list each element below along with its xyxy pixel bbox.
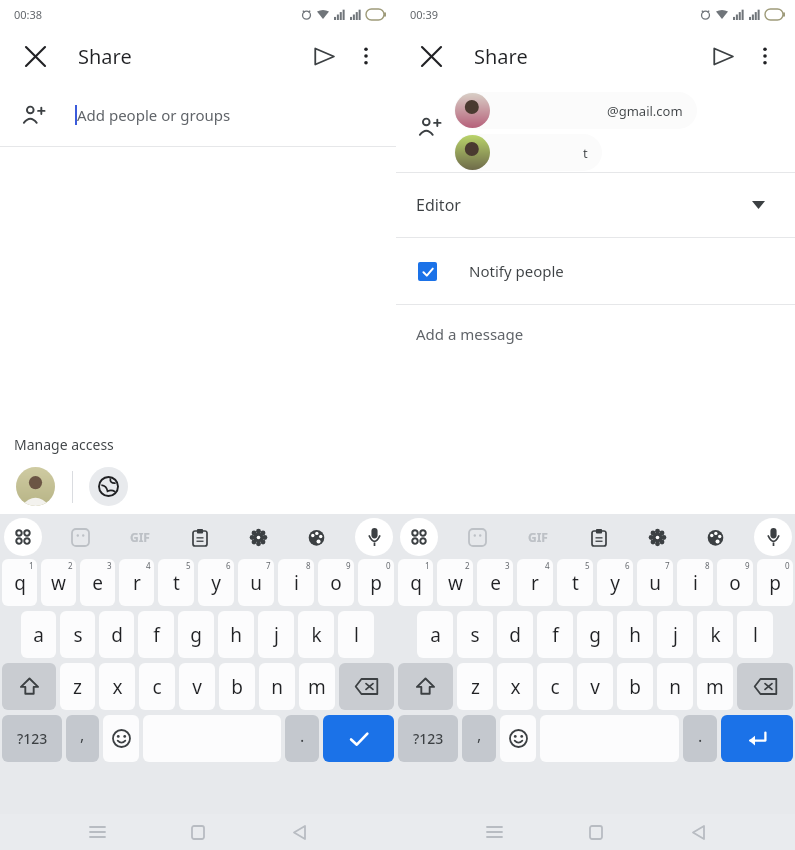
- button[interactable]: Settings: [239, 518, 277, 556]
- button[interactable]: t: [557, 559, 593, 606]
- button[interactable]: w: [437, 559, 473, 606]
- button[interactable]: o: [318, 559, 354, 606]
- button[interactable]: b: [617, 663, 653, 710]
- button[interactable]: Voice input: [754, 518, 792, 556]
- button[interactable]: s: [60, 611, 95, 658]
- button[interactable]: Themes: [696, 518, 734, 556]
- button[interactable]: j: [657, 611, 693, 658]
- button[interactable]: Toolbox: [4, 518, 42, 556]
- button[interactable]: m: [299, 663, 335, 710]
- button[interactable]: ,: [66, 715, 99, 762]
- button[interactable]: j: [258, 611, 294, 658]
- button[interactable]: Send: [701, 34, 745, 78]
- button[interactable]: Close: [18, 39, 52, 73]
- button[interactable]: Back: [680, 814, 716, 850]
- button[interactable]: Editor: [396, 173, 795, 237]
- button[interactable]: Clipboard: [181, 518, 219, 556]
- button[interactable]: k: [298, 611, 334, 658]
- button[interactable]: Notify people: [396, 238, 795, 304]
- button[interactable]: a: [417, 611, 453, 658]
- button[interactable]: Home: [180, 814, 216, 850]
- button[interactable]: l: [338, 611, 374, 658]
- button[interactable]: Add people or groups: [0, 84, 396, 146]
- button[interactable]: Enter: [721, 715, 793, 762]
- button[interactable]: q: [398, 559, 433, 606]
- button[interactable]: t: [454, 134, 602, 171]
- button[interactable]: q: [2, 559, 37, 606]
- button[interactable]: o: [717, 559, 753, 606]
- button[interactable]: g: [577, 611, 613, 658]
- button[interactable]: More options: [346, 36, 386, 76]
- button[interactable]: m: [697, 663, 733, 710]
- button[interactable]: t: [158, 559, 194, 606]
- button[interactable]: Link sharing: [89, 467, 128, 506]
- button[interactable]: Backspace: [737, 663, 793, 710]
- button[interactable]: Owner avatar: [16, 467, 55, 506]
- button[interactable]: v: [179, 663, 215, 710]
- button[interactable]: Back: [281, 814, 317, 850]
- button[interactable]: k: [697, 611, 733, 658]
- button[interactable]: GIF: [516, 515, 560, 559]
- button[interactable]: Emoji: [500, 715, 536, 762]
- button[interactable]: u: [238, 559, 274, 606]
- button[interactable]: y: [597, 559, 633, 606]
- button[interactable]: Stickers: [61, 518, 99, 556]
- button[interactable]: More options: [745, 36, 785, 76]
- button[interactable]: Voice input: [355, 518, 393, 556]
- button[interactable]: c: [139, 663, 175, 710]
- button[interactable]: d: [497, 611, 533, 658]
- button[interactable]: .: [683, 715, 717, 762]
- button[interactable]: c: [537, 663, 573, 710]
- button[interactable]: ?123: [398, 715, 458, 762]
- button[interactable]: r: [517, 559, 553, 606]
- button[interactable]: @gmail.com: [454, 92, 697, 129]
- button[interactable]: GIF: [118, 515, 162, 559]
- button[interactable]: h: [218, 611, 254, 658]
- button[interactable]: n: [657, 663, 693, 710]
- button[interactable]: i: [278, 559, 314, 606]
- button[interactable]: s: [457, 611, 493, 658]
- button[interactable]: Recents: [476, 814, 512, 850]
- button[interactable]: Settings: [638, 518, 676, 556]
- button[interactable]: u: [637, 559, 673, 606]
- button[interactable]: l: [737, 611, 773, 658]
- button[interactable]: Close: [414, 39, 448, 73]
- button[interactable]: x: [99, 663, 135, 710]
- button[interactable]: Shift: [2, 663, 56, 710]
- button[interactable]: d: [99, 611, 134, 658]
- button[interactable]: Home: [578, 814, 614, 850]
- button[interactable]: Shift: [398, 663, 453, 710]
- button[interactable]: Themes: [297, 518, 335, 556]
- button[interactable]: w: [41, 559, 76, 606]
- button[interactable]: Done: [323, 715, 394, 762]
- button[interactable]: b: [219, 663, 255, 710]
- button[interactable]: g: [178, 611, 214, 658]
- button[interactable]: f: [138, 611, 174, 658]
- button[interactable]: Add a message: [396, 305, 795, 363]
- button[interactable]: f: [537, 611, 573, 658]
- button[interactable]: Emoji: [103, 715, 139, 762]
- button[interactable]: i: [677, 559, 713, 606]
- button[interactable]: z: [457, 663, 493, 710]
- button[interactable]: ?123: [2, 715, 62, 762]
- button[interactable]: a: [21, 611, 56, 658]
- button[interactable]: .: [285, 715, 319, 762]
- button[interactable]: Toolbox: [400, 518, 438, 556]
- button[interactable]: r: [119, 559, 154, 606]
- button[interactable]: Recents: [79, 814, 115, 850]
- button[interactable]: Stickers: [458, 518, 496, 556]
- button[interactable]: e: [80, 559, 115, 606]
- button[interactable]: y: [198, 559, 234, 606]
- button[interactable]: n: [259, 663, 295, 710]
- button[interactable]: e: [477, 559, 513, 606]
- button[interactable]: Send: [302, 34, 346, 78]
- button[interactable]: p: [358, 559, 394, 606]
- button[interactable]: Clipboard: [580, 518, 618, 556]
- button[interactable]: x: [497, 663, 533, 710]
- button[interactable]: p: [757, 559, 793, 606]
- button[interactable]: ,: [462, 715, 496, 762]
- button[interactable]: h: [617, 611, 653, 658]
- button[interactable]: Backspace: [339, 663, 394, 710]
